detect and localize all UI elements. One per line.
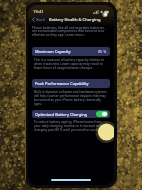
staticText: 85 % (98, 49, 107, 54)
button[interactable]: Back (30, 16, 47, 23)
staticText: To reduce battery ageing, iPhone learns … (34, 120, 108, 132)
staticText: This is a measure of battery capacity re… (34, 58, 108, 70)
staticText: Optimized Battery Charging (35, 112, 88, 117)
button[interactable]: Maximum Capacity (32, 47, 110, 56)
staticText: Maximum Capacity (35, 49, 71, 54)
button[interactable]: Peak Performance Capability (32, 79, 110, 88)
staticText: Phone batteries, like all rechargeable b… (32, 25, 110, 37)
button[interactable]: Optimized Battery Charging (32, 110, 110, 118)
button[interactable]: Optimized Battery Charging toggle (96, 111, 108, 117)
staticText: Back (36, 17, 45, 22)
staticText: Battery Health & Charging (49, 17, 101, 22)
staticText: Built-in dynamic software and hardware s… (34, 90, 108, 106)
staticText: Peak Performance Capability (35, 81, 89, 86)
staticText: 19:41 (33, 9, 44, 15)
